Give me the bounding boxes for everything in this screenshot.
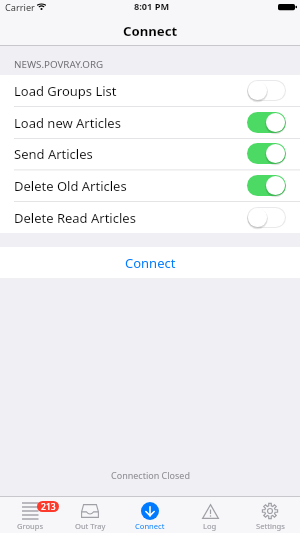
staticText: NEWS.POVRAY.ORG	[14, 58, 104, 71]
staticText: Groups	[17, 521, 44, 531]
staticText: Delete Old Articles	[14, 177, 127, 195]
staticText: Carrier	[5, 1, 35, 14]
button[interactable]: Connect	[120, 497, 180, 533]
button[interactable]: 213	[0, 497, 60, 533]
staticText: Log	[203, 521, 217, 531]
button[interactable]: Delete Read Articles	[0, 202, 300, 234]
button[interactable]: Disabled	[247, 80, 286, 101]
staticText: Out Tray	[75, 521, 106, 531]
button[interactable]: Load new Articles	[0, 107, 300, 139]
staticText: Load new Articles	[14, 114, 121, 132]
staticText: 8:01 PM	[134, 0, 170, 13]
staticText: Load Groups List	[14, 82, 117, 100]
button[interactable]: Connect	[0, 247, 300, 278]
staticText: Send Articles	[14, 145, 93, 163]
button[interactable]: Enabled	[247, 143, 286, 164]
staticText: 213	[41, 501, 56, 512]
button[interactable]: Disabled	[247, 207, 286, 228]
staticText: Settings	[256, 521, 285, 531]
button[interactable]: Load Groups List	[0, 75, 300, 107]
button[interactable]: Enabled	[247, 112, 286, 133]
button[interactable]: Enabled	[247, 175, 286, 196]
staticText: Connect	[123, 22, 178, 40]
other: Connect	[141, 502, 159, 520]
staticText: Connect	[125, 254, 176, 272]
button[interactable]: Send Articles	[0, 138, 300, 170]
button[interactable]: Delete Old Articles	[0, 170, 300, 202]
button[interactable]: Settings	[240, 497, 300, 533]
staticText: Delete Read Articles	[14, 209, 136, 227]
button[interactable]: Log	[180, 497, 240, 533]
staticText: Connection Closed	[111, 469, 190, 481]
staticText: Connect	[135, 521, 165, 531]
button[interactable]: Out Tray	[60, 497, 120, 533]
